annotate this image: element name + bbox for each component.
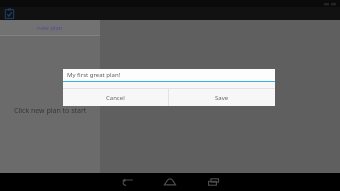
- staticText: My first great plan!: [67, 71, 121, 79]
- staticText: Cancel: [106, 94, 125, 102]
- button[interactable]: App icon: [3, 7, 16, 20]
- button[interactable]: Recent apps: [196, 173, 230, 191]
- staticText: Click new plan to start: [14, 106, 87, 116]
- staticText: new plan: [37, 24, 63, 32]
- button[interactable]: Cancel: [63, 89, 168, 106]
- button[interactable]: Save: [169, 89, 275, 106]
- button[interactable]: Home: [153, 173, 187, 191]
- button[interactable]: new plan: [0, 20, 100, 35]
- button[interactable]: My first great plan!: [63, 69, 275, 81]
- staticText: Save: [215, 94, 229, 102]
- button[interactable]: Back: [110, 173, 144, 191]
